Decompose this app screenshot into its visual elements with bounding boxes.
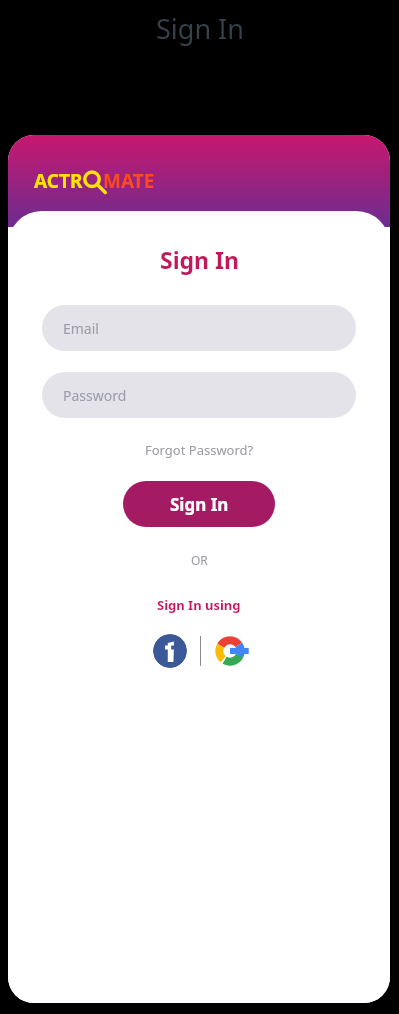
staticText: Sign In using	[157, 596, 241, 614]
button[interactable]: Forgot Password?	[137, 437, 262, 463]
button[interactable]: Sign In using	[149, 592, 249, 618]
staticText: OR	[191, 552, 208, 568]
button[interactable]: Sign in with Google	[214, 635, 246, 667]
staticText: MATE	[103, 168, 155, 194]
staticText: Sign In	[160, 244, 239, 275]
button[interactable]: Sign In	[123, 481, 275, 527]
staticText: Sign In	[170, 493, 229, 516]
button[interactable]: Password	[42, 372, 356, 418]
staticText: Email	[63, 319, 99, 338]
staticText: Forgot Password?	[145, 441, 254, 459]
staticText: Password	[63, 386, 127, 405]
button[interactable]: Sign in with Facebook	[153, 634, 187, 668]
staticText: ACTR	[34, 168, 83, 194]
staticText: Sign In	[156, 10, 244, 47]
button[interactable]: Email	[42, 305, 356, 351]
